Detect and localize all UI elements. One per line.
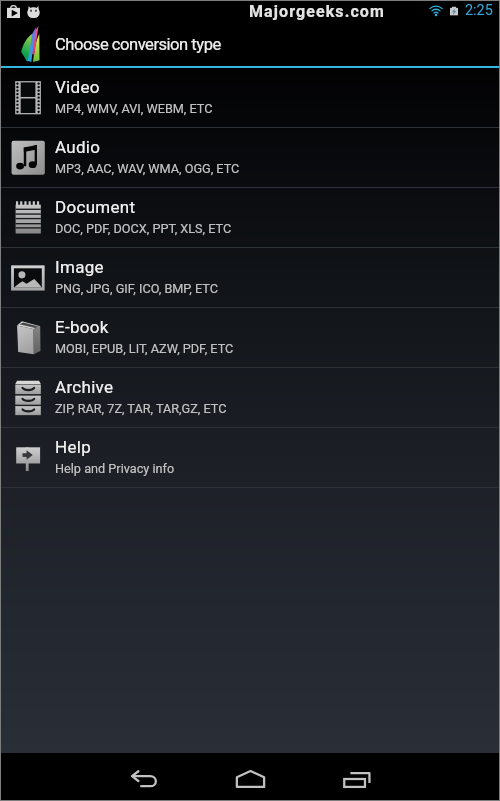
button[interactable]: Audio <box>1 128 499 187</box>
staticText: Image <box>55 257 104 277</box>
staticText: MOBI, EPUB, LIT, AZW, PDF, ETC <box>55 341 234 356</box>
staticText: DOC, PDF, DOCX, PPT, XLS, ETC <box>55 221 232 236</box>
staticText: E-book <box>55 317 109 337</box>
staticText: Help and Privacy info <box>55 461 175 476</box>
staticText: Choose conversion type <box>55 35 221 54</box>
button[interactable]: Video <box>1 68 499 127</box>
button[interactable]: Archive <box>1 368 499 427</box>
staticText: Archive <box>55 377 114 397</box>
button[interactable]: Choose conversion type <box>1 22 499 66</box>
staticText: MP4, WMV, AVI, WEBM, ETC <box>55 101 213 116</box>
button[interactable]: Back <box>106 753 182 800</box>
button[interactable]: Image <box>1 248 499 307</box>
button[interactable]: Help <box>1 428 499 487</box>
staticText: Help <box>55 437 92 457</box>
button[interactable]: E-book <box>1 308 499 367</box>
staticText: Majorgeeks.com <box>249 2 385 21</box>
staticText: ZIP, RAR, 7Z, TAR, TAR,GZ, ETC <box>55 401 227 416</box>
staticText: PNG, JPG, GIF, ICO, BMP, ETC <box>55 281 218 296</box>
staticText: MP3, AAC, WAV, WMA, OGG, ETC <box>55 161 240 176</box>
button[interactable]: Document <box>1 188 499 247</box>
staticText: 2:25 <box>465 2 493 19</box>
button[interactable]: Recent apps <box>318 753 394 800</box>
staticText: Audio <box>55 137 101 157</box>
staticText: Document <box>55 197 136 217</box>
button[interactable]: Home <box>212 753 288 800</box>
staticText: Video <box>55 77 100 97</box>
